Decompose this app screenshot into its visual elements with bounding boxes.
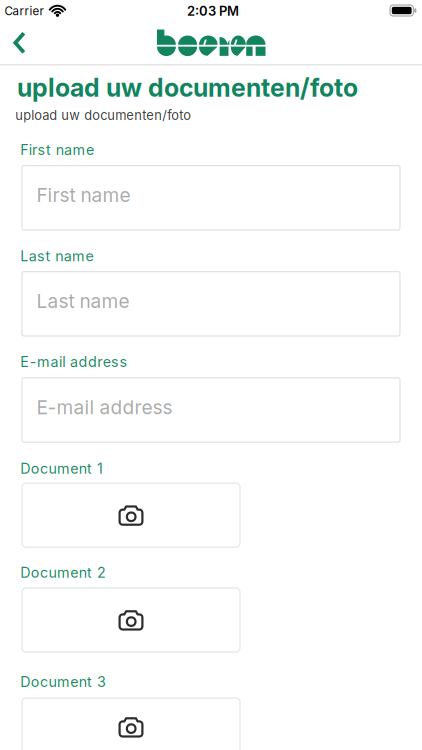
button[interactable]: Back <box>8 20 38 64</box>
staticText: 2:03 PM <box>187 3 239 19</box>
staticText: First name <box>20 141 94 158</box>
button[interactable]: E-mail address text field <box>22 378 400 442</box>
staticText: E-mail address <box>36 396 172 419</box>
staticText: Document 2 <box>20 564 106 581</box>
staticText: Carrier <box>4 4 43 18</box>
staticText: E-mail address <box>20 353 127 370</box>
button[interactable]: Document 1 — take photo <box>22 483 240 547</box>
staticText: Document 1 <box>20 460 103 477</box>
button[interactable]: First name text field <box>22 166 400 230</box>
button[interactable]: Last name text field <box>22 272 400 336</box>
staticText: First name <box>36 184 130 207</box>
staticText: Last name <box>36 290 129 313</box>
button[interactable]: Document 2 — take photo <box>22 588 240 652</box>
staticText: upload uw documenten/foto <box>17 72 358 103</box>
staticText: Last name <box>20 247 93 265</box>
button[interactable]: Document 3 — take photo <box>22 698 240 750</box>
staticText: upload uw documenten/foto <box>15 107 191 123</box>
staticText: Document 3 <box>20 673 106 690</box>
